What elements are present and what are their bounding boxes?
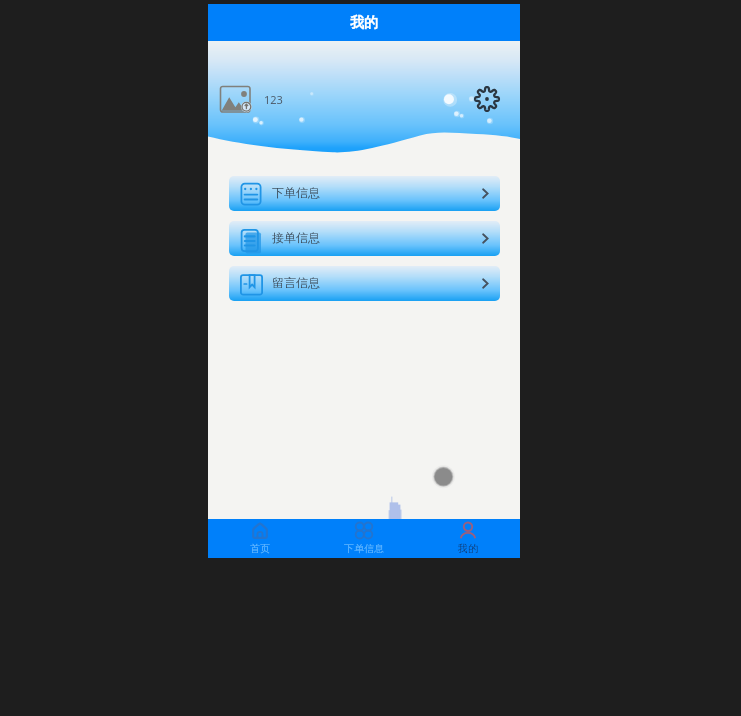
staticText: 我的 <box>458 542 478 555</box>
button[interactable]: 下单信息 <box>229 176 500 211</box>
staticText: 接单信息 <box>272 230 320 245</box>
staticText: 我的 <box>350 14 378 32</box>
staticText: 首页 <box>250 542 270 555</box>
button[interactable]: 下单信息 <box>312 519 416 558</box>
staticText: 下单信息 <box>344 542 384 555</box>
button[interactable]: 我的 <box>416 519 520 558</box>
button[interactable]: 首页 <box>208 519 312 558</box>
button[interactable]: 留言信息 <box>229 266 500 301</box>
button[interactable]: Settings <box>473 85 501 113</box>
staticText: 留言信息 <box>272 275 320 290</box>
staticText: 下单信息 <box>272 185 320 200</box>
staticText: 123 <box>264 92 283 107</box>
button[interactable]: 接单信息 <box>229 221 500 256</box>
button[interactable]: Loading <box>425 459 462 496</box>
